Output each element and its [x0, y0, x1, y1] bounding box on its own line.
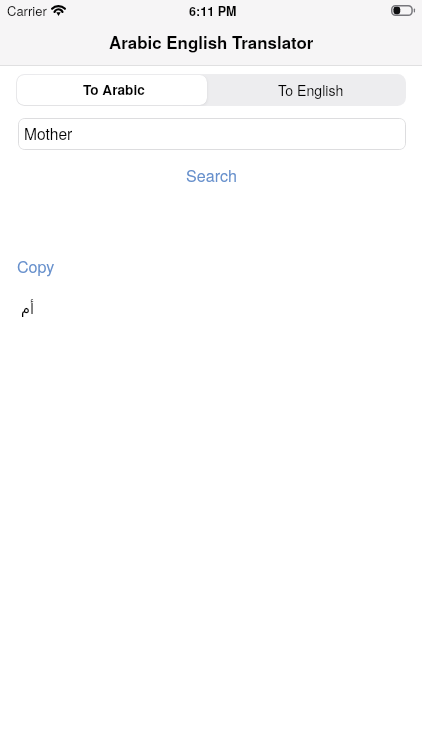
staticText: Arabic English Translator: [109, 30, 314, 54]
staticText: Carrier: [7, 1, 47, 20]
staticText: 6:11 PM: [189, 2, 237, 20]
staticText: Mother: [24, 122, 73, 144]
button[interactable]: Search: [186, 164, 237, 187]
staticText: أم: [21, 301, 35, 318]
button[interactable]: To English: [208, 74, 406, 106]
other: Battery 35 percent: [391, 5, 416, 16]
staticText: Copy: [17, 255, 55, 278]
other: Wi-Fi: [51, 5, 66, 16]
staticText: Search: [186, 164, 237, 187]
button[interactable]: Mother: [18, 118, 406, 150]
button[interactable]: Copy: [17, 255, 55, 278]
staticText: To Arabic: [83, 80, 145, 99]
button[interactable]: To Arabic: [17, 75, 207, 105]
staticText: To English: [278, 80, 344, 100]
